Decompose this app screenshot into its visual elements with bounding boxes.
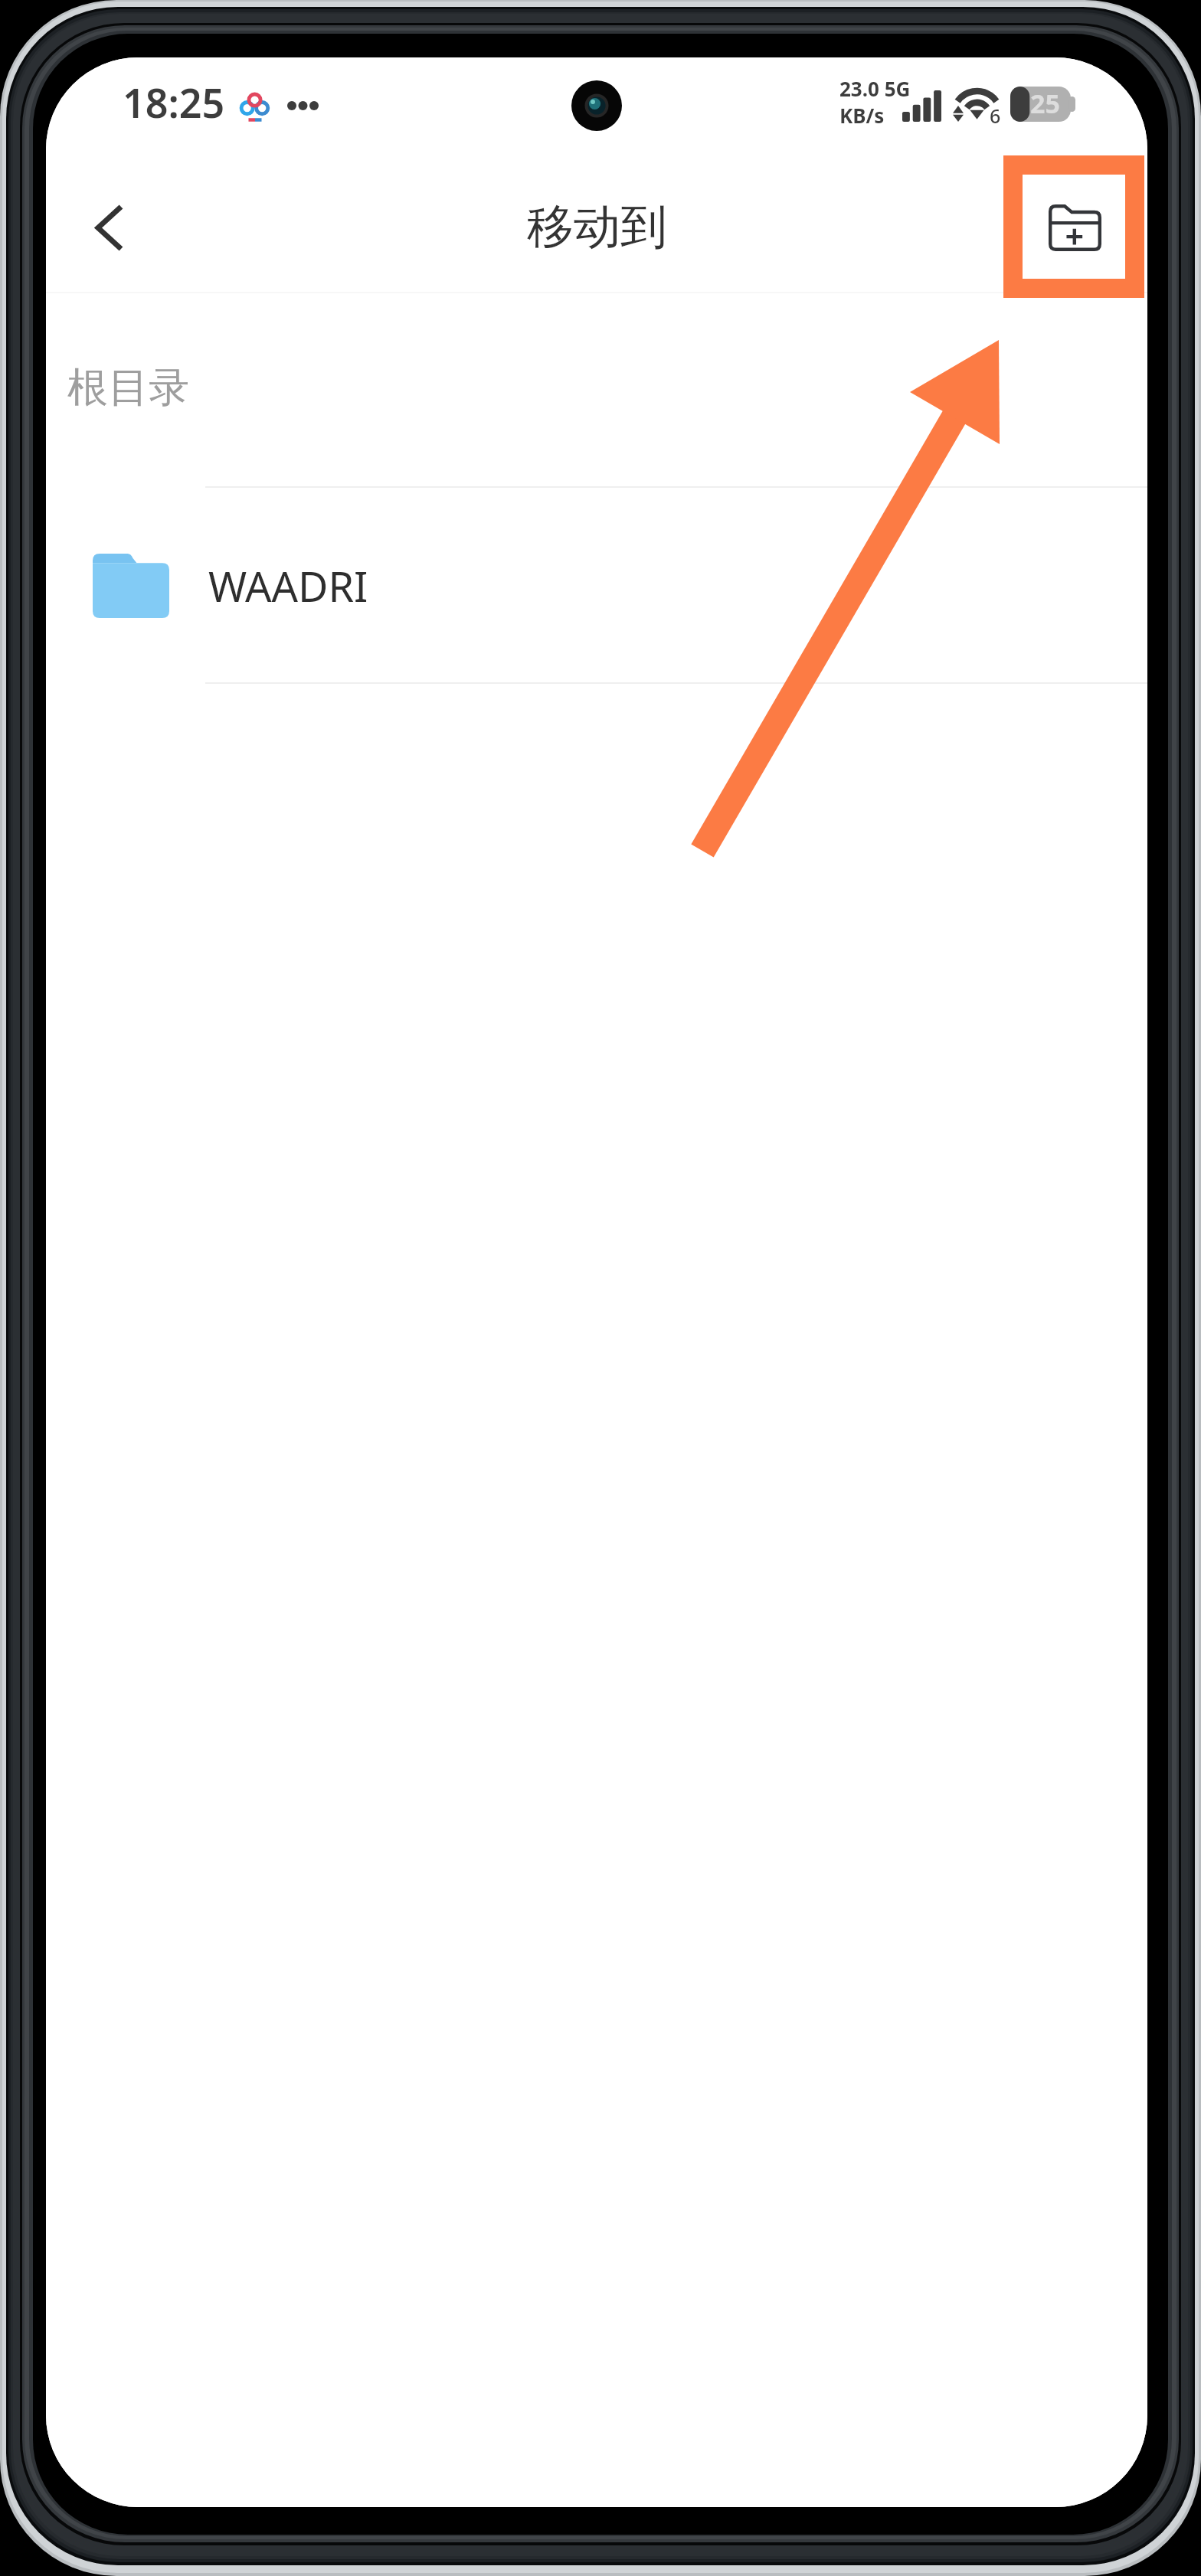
button[interactable]: WAADRI [46,488,1147,684]
button[interactable]: Back [46,155,161,292]
staticText: 23.0 5G [839,75,911,102]
staticText: 18:25 [123,75,225,129]
staticText: 根目录 [67,362,189,414]
staticText: WAADRI [208,557,368,614]
staticText: 6 [990,103,1001,129]
staticText: KB/s [839,102,885,129]
staticText: 移动到 [527,198,667,257]
button[interactable]: New folder [1025,155,1147,292]
staticText: 25 [1030,86,1060,121]
